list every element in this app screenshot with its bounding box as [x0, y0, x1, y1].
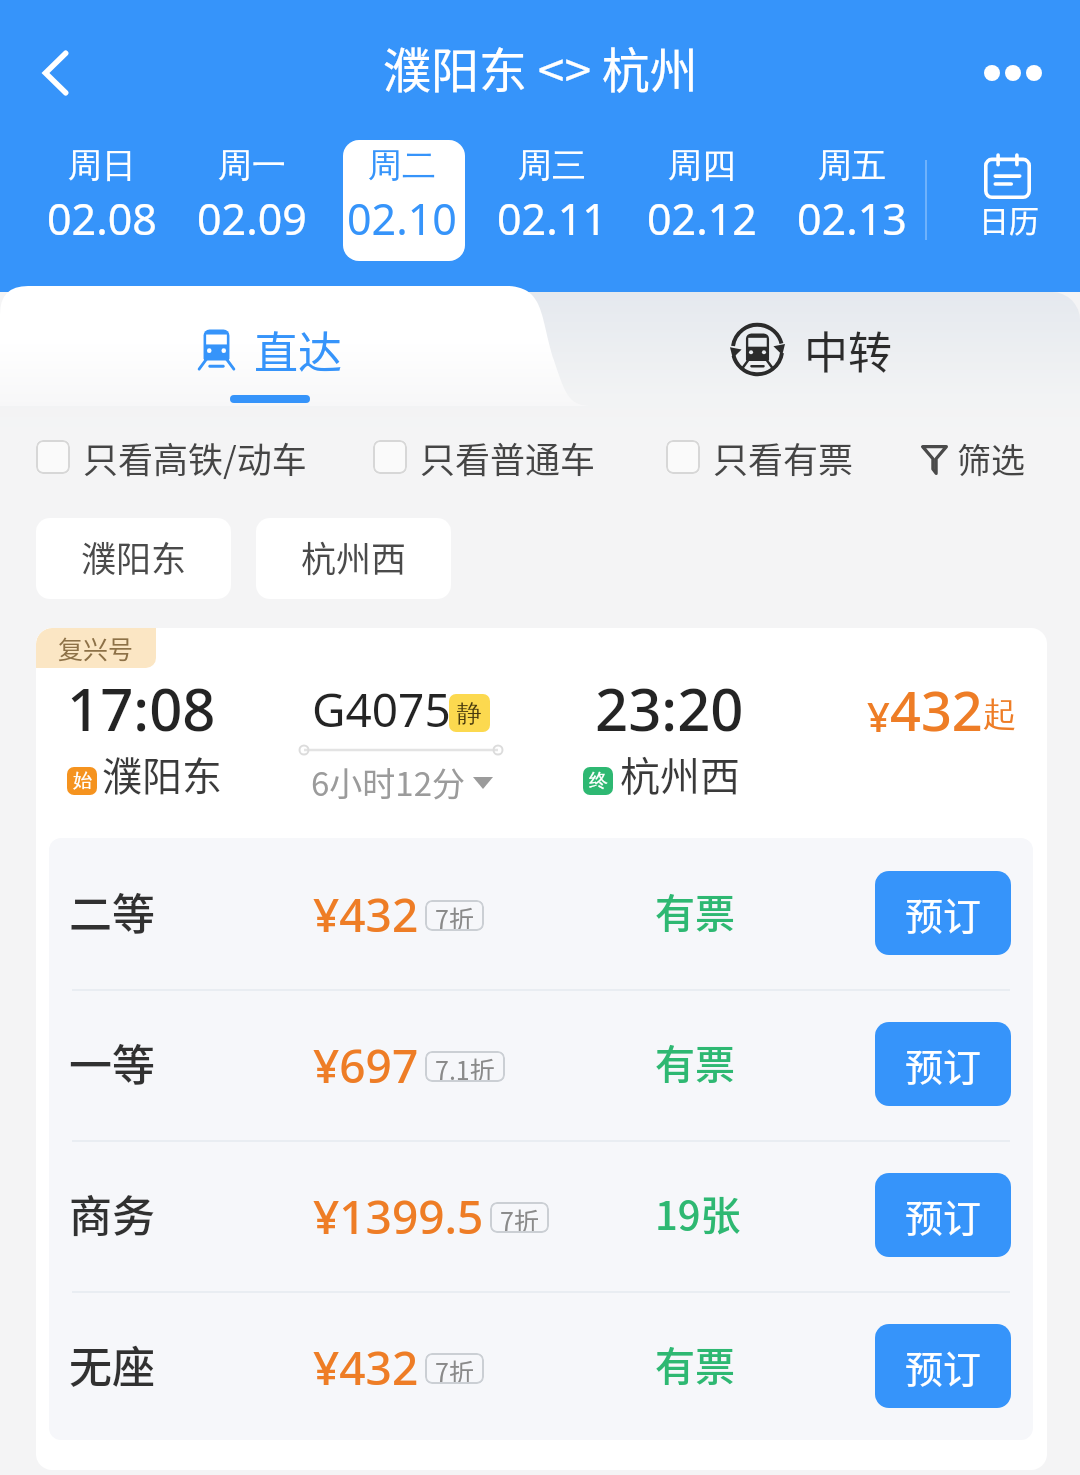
button[interactable]: 只看有票	[666, 427, 854, 487]
button[interactable]: 周五	[791, 135, 913, 256]
staticText: 6小时12分	[311, 758, 465, 806]
staticText: 周五	[818, 144, 886, 187]
staticText: 预订	[905, 1037, 982, 1092]
staticText: 7折	[435, 900, 474, 931]
staticText: 终	[589, 769, 608, 793]
button[interactable]: 周一	[191, 135, 313, 256]
staticText: 二等	[69, 880, 155, 942]
staticText: 预订	[905, 1188, 982, 1243]
staticText: 有票	[655, 1033, 735, 1091]
staticText: 濮阳东	[102, 745, 222, 803]
button[interactable]: 二等	[49, 838, 1033, 989]
staticText: 7折	[435, 1353, 474, 1384]
staticText: 02.12	[647, 189, 757, 248]
button[interactable]: 预订	[875, 1324, 1011, 1408]
staticText: 有票	[655, 882, 735, 940]
button[interactable]: 只看高铁/动车	[36, 427, 307, 487]
staticText: 有票	[655, 1335, 735, 1393]
button[interactable]: 周四	[641, 135, 763, 256]
staticText: G4075	[312, 678, 451, 741]
staticText: 周二	[368, 144, 436, 187]
staticText: 周日	[68, 144, 136, 187]
button[interactable]: 预订	[875, 1173, 1011, 1257]
button[interactable]: 复兴号	[36, 628, 1047, 1470]
button[interactable]: 濮阳东	[36, 518, 231, 599]
button[interactable]: 周三	[491, 135, 613, 256]
staticText: 02.10	[347, 189, 457, 248]
staticText: 周三	[518, 144, 586, 187]
staticText: 02.11	[497, 189, 607, 248]
staticText: 7.1折	[435, 1051, 495, 1082]
staticText: ¥432	[313, 883, 419, 946]
button[interactable]: 无座	[49, 1291, 1033, 1440]
button[interactable]: 杭州西	[256, 518, 451, 599]
staticText: 02.13	[797, 189, 907, 248]
button[interactable]: 筛选	[921, 428, 1025, 488]
staticText: 预订	[905, 1339, 982, 1394]
staticText: 一等	[69, 1031, 155, 1093]
button[interactable]: 预订	[875, 1022, 1011, 1106]
staticText: 静	[457, 698, 482, 729]
button[interactable]: 一等	[49, 989, 1033, 1140]
staticText: 预订	[905, 886, 982, 941]
staticText: 商务	[69, 1182, 155, 1244]
button[interactable]: 周日	[41, 135, 163, 256]
staticText: 19张	[655, 1184, 741, 1242]
staticText: 濮阳东 <> 杭州	[383, 32, 698, 102]
staticText: ¥697	[313, 1034, 419, 1097]
staticText: 无座	[69, 1333, 155, 1395]
button[interactable]: More options	[963, 33, 1063, 113]
staticText: 只看普通车	[420, 432, 596, 483]
staticText: 中转	[804, 318, 892, 378]
staticText: 周四	[668, 144, 736, 187]
staticText: 筛选	[957, 434, 1025, 483]
button[interactable]: Back	[16, 33, 96, 113]
button[interactable]: 只看普通车	[373, 427, 596, 487]
button[interactable]: 商务	[49, 1140, 1033, 1291]
button[interactable]: 中转	[730, 319, 892, 379]
staticText: ¥1399.5	[313, 1185, 484, 1248]
staticText: 日历	[979, 197, 1039, 240]
staticText: 周一	[218, 144, 286, 187]
staticText: 濮阳东	[81, 531, 187, 582]
staticText: 7折	[500, 1202, 539, 1233]
staticText: 17:08	[67, 669, 216, 748]
staticText: 复兴号	[58, 630, 134, 666]
staticText: ¥432	[313, 1336, 419, 1399]
staticText: 直达	[254, 318, 342, 376]
staticText: 始	[73, 769, 92, 793]
staticText: 02.09	[197, 189, 307, 248]
staticText: ¥	[867, 689, 890, 743]
staticText: 起	[983, 693, 1017, 736]
button[interactable]: 直达	[198, 319, 342, 377]
button[interactable]: Calendar	[949, 140, 1069, 261]
button[interactable]: 预订	[875, 871, 1011, 955]
staticText: 杭州西	[301, 531, 407, 582]
staticText: 只看有票	[713, 432, 854, 483]
staticText: 杭州西	[620, 745, 740, 803]
staticText: 23:20	[595, 669, 744, 748]
staticText: 432	[890, 673, 983, 747]
staticText: 只看高铁/动车	[83, 432, 307, 483]
button[interactable]: 周二	[341, 135, 463, 256]
staticText: 02.08	[47, 189, 157, 248]
